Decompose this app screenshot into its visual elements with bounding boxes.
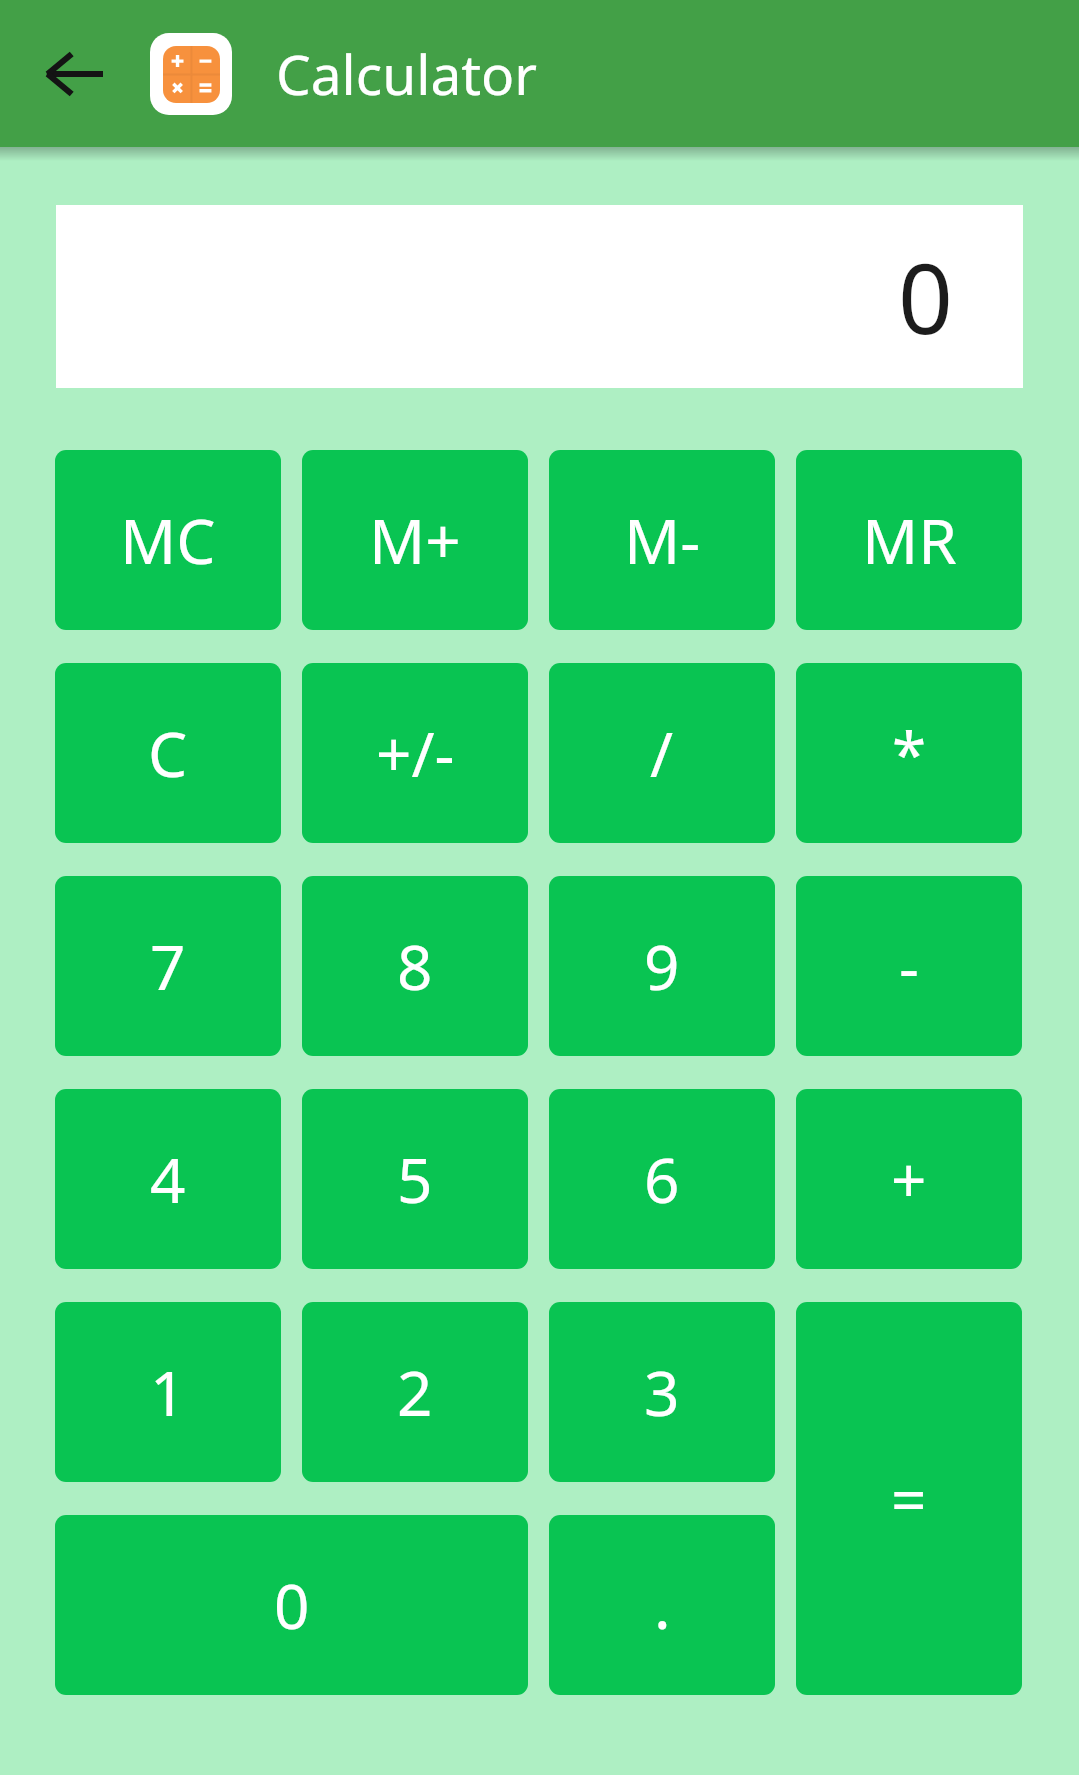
staticText: Calculator (276, 36, 538, 111)
staticText: 6 (644, 1137, 680, 1221)
button[interactable]: +/- (302, 663, 528, 843)
button[interactable]: C (55, 663, 281, 843)
button[interactable]: - (796, 876, 1022, 1056)
button[interactable]: + (796, 1089, 1022, 1269)
staticText: 3 (644, 1350, 680, 1434)
staticText: C (148, 711, 188, 795)
button[interactable]: * (796, 663, 1022, 843)
button[interactable]: 8 (302, 876, 528, 1056)
button[interactable]: 9 (549, 876, 775, 1056)
button[interactable]: 3 (549, 1302, 775, 1482)
button[interactable]: 0 (55, 1515, 528, 1695)
staticText: . (654, 1563, 671, 1647)
staticText: 8 (397, 924, 433, 1008)
button[interactable]: Back (36, 36, 112, 112)
button[interactable]: M- (549, 450, 775, 630)
button[interactable]: 5 (302, 1089, 528, 1269)
button[interactable]: 1 (55, 1302, 281, 1482)
staticText: 1 (150, 1350, 186, 1434)
staticText: MR (862, 498, 957, 582)
staticText: + (891, 1137, 927, 1221)
staticText: 0 (274, 1563, 310, 1647)
staticText: - (899, 924, 919, 1008)
button[interactable]: / (549, 663, 775, 843)
button[interactable]: MR (796, 450, 1022, 630)
staticText: 9 (644, 924, 680, 1008)
staticText: * (892, 711, 927, 795)
staticText: 0 (898, 231, 953, 362)
button[interactable]: 7 (55, 876, 281, 1056)
button[interactable]: 2 (302, 1302, 528, 1482)
staticText: +/- (376, 711, 455, 795)
staticText: 2 (397, 1350, 433, 1434)
button[interactable]: 4 (55, 1089, 281, 1269)
staticText: M+ (369, 498, 461, 582)
button[interactable]: = (796, 1302, 1022, 1695)
button[interactable]: . (549, 1515, 775, 1695)
button[interactable]: 6 (549, 1089, 775, 1269)
staticText: M- (624, 498, 701, 582)
staticText: 4 (150, 1137, 186, 1221)
staticText: 7 (150, 924, 186, 1008)
staticText: / (650, 711, 674, 795)
button[interactable]: M+ (302, 450, 528, 630)
staticText: 5 (397, 1137, 433, 1221)
staticText: MC (120, 498, 216, 582)
button[interactable]: MC (55, 450, 281, 630)
staticText: = (891, 1457, 927, 1541)
